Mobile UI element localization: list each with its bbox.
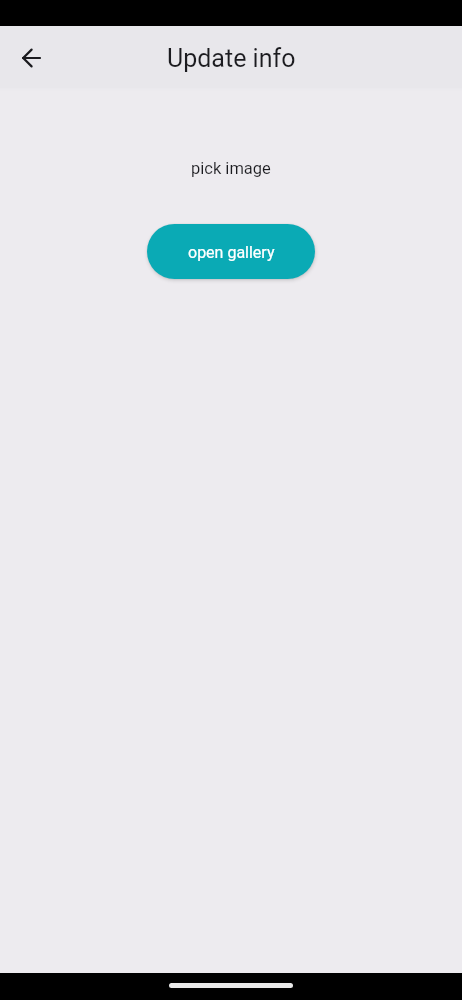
button[interactable]: open gallery	[147, 224, 315, 279]
button[interactable]: Back	[12, 39, 50, 77]
staticText: Update info	[167, 44, 296, 73]
staticText: pick image	[191, 159, 271, 178]
staticText: open gallery	[188, 243, 275, 262]
